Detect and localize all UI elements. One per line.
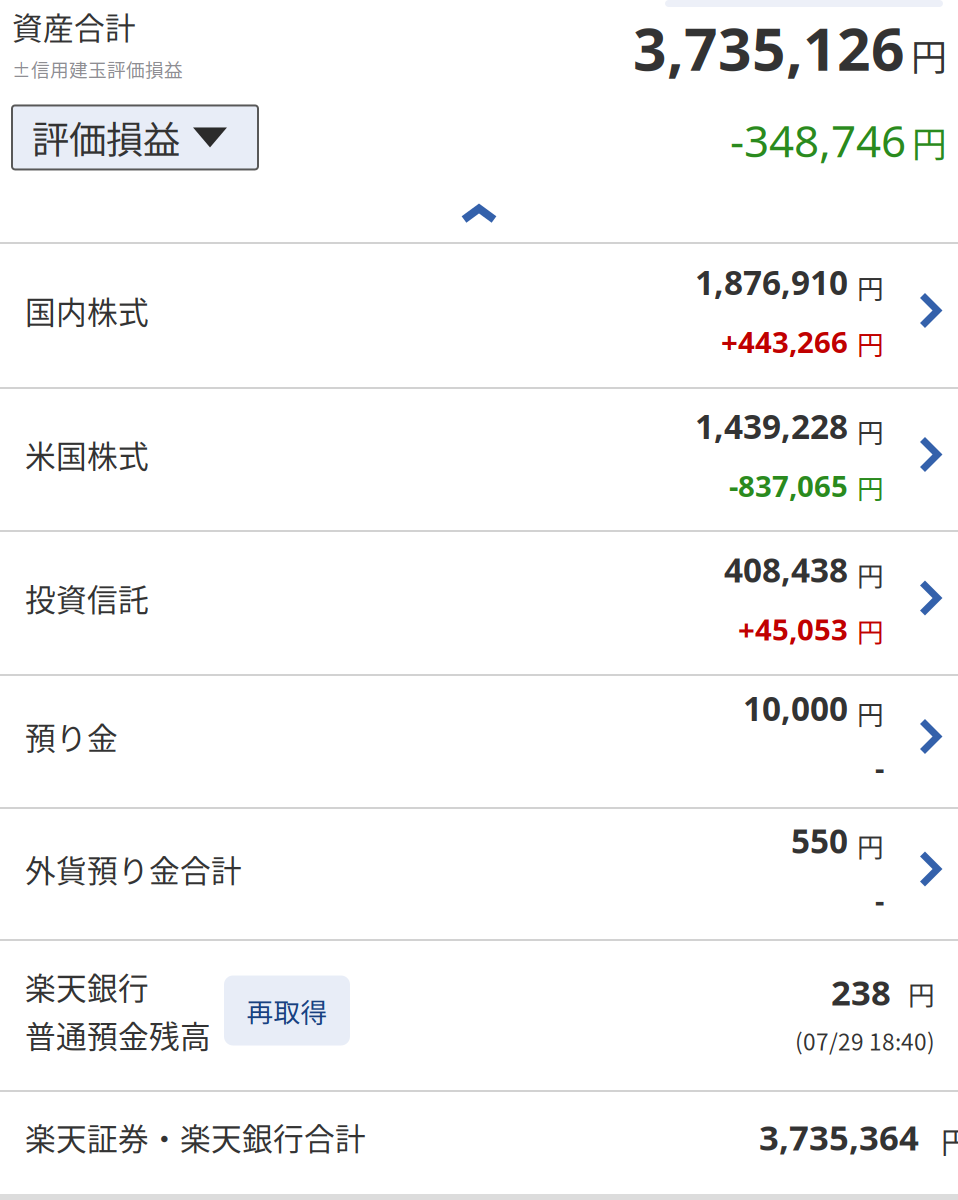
button[interactable]: 楽天銀行 [0,941,958,1090]
button[interactable]: 国内株式 [0,244,958,387]
staticText: 米国株式 [25,432,149,477]
button[interactable]: 再取得 [224,975,350,1045]
staticText: - [875,748,884,787]
staticText: 外貨預り金合計 [25,847,242,891]
staticText: 円 [857,612,884,650]
staticText: 10,000 [743,686,848,730]
staticText: 円 [857,826,884,865]
staticText: 円 [912,117,947,167]
staticText: 408,438 [724,547,848,592]
staticText: 3,735,364 [759,1114,919,1160]
staticText: 円 [908,975,935,1013]
staticText: 238 [831,969,891,1015]
staticText: 円 [857,555,884,594]
staticText: 再取得 [246,991,327,1030]
staticText: 預り金 [25,714,118,759]
staticText: +45,053 [738,610,848,649]
staticText: -837,065 [729,466,848,505]
staticText: 円 [911,29,947,81]
button[interactable]: 投資信託 [0,532,958,674]
staticText: ±信用建玉評価損益 [12,55,183,82]
staticText: 円 [857,694,884,733]
staticText: - [875,881,884,920]
staticText: 円 [857,468,884,507]
staticText: (07/29 18:40) [795,1024,935,1057]
button[interactable]: 内訳を閉じる [419,197,539,231]
staticText: 円 [857,268,884,307]
staticText: +443,266 [721,322,848,361]
staticText: 円 [941,1119,958,1162]
button[interactable]: 外貨預り金合計 [0,809,958,939]
staticText: 円 [857,324,884,363]
button[interactable]: 米国株式 [0,389,958,530]
staticText: 3,735,126 [633,9,905,87]
staticText: 国内株式 [25,288,149,333]
button[interactable]: 評価損益 [12,105,258,169]
button[interactable]: 預り金 [0,676,958,807]
staticText: 1,439,228 [695,404,848,448]
staticText: 円 [857,412,884,451]
staticText: 楽天銀行 [25,964,149,1008]
staticText: -348,746 [730,111,906,169]
staticText: 資産合計 [12,4,136,48]
staticText: 投資信託 [25,576,149,620]
staticText: 1,876,910 [695,260,848,304]
staticText: 普通預金残高 [25,1012,211,1057]
staticText: 楽天証券・楽天銀行合計 [25,1115,366,1159]
staticText: 550 [791,818,848,863]
staticText: 評価損益 [32,110,180,164]
